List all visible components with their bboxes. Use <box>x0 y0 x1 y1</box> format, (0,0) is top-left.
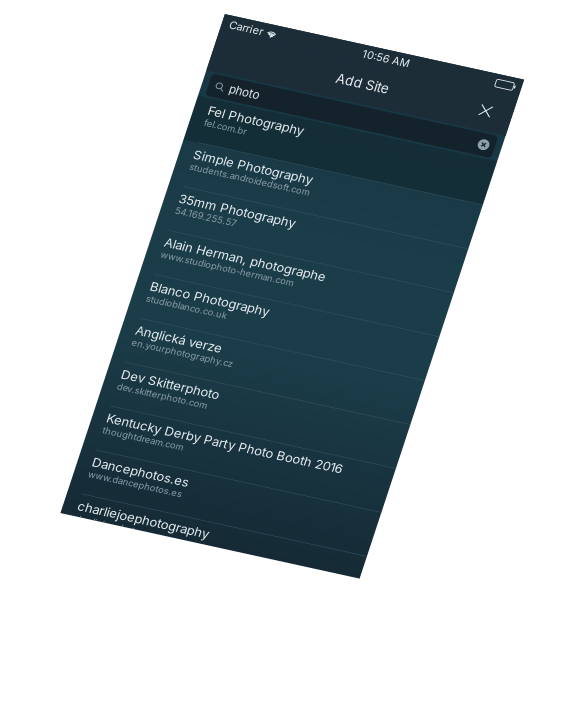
staticText: Add Site <box>357 48 413 64</box>
button[interactable]: Blanco Photography <box>225 307 545 357</box>
button[interactable]: 35mm Photography <box>225 207 545 257</box>
staticText: charliejoephotography <box>240 562 380 578</box>
staticText: photo <box>254 85 286 100</box>
button[interactable]: Dev Skitterphoto <box>225 407 545 457</box>
button[interactable]: Close <box>497 36 537 76</box>
button[interactable]: Fel Photography <box>225 107 545 157</box>
staticText: Blanco Photography <box>240 312 367 328</box>
staticText: www.dancephotos.es <box>240 528 340 540</box>
staticText: Carrier <box>233 17 269 31</box>
button[interactable]: Kentucky Derby Party Photo Booth 2016 <box>225 457 545 507</box>
button[interactable]: Anglická verze <box>225 357 545 407</box>
staticText: Kentucky Derby Party Photo Booth 2016 <box>240 462 492 478</box>
staticText: fel.com.br <box>240 128 286 140</box>
button[interactable]: Alain Herman, photographe <box>225 257 545 307</box>
staticText: Alain Herman, photographe <box>240 262 412 278</box>
button[interactable]: Dancephotos.es <box>225 507 545 557</box>
staticText: 54.169.255.57 <box>240 228 305 240</box>
staticText: Simple Photography <box>240 162 367 178</box>
staticText: www.studiophoto-herman.com <box>240 278 382 290</box>
staticText: thoughtdream.com <box>240 478 326 490</box>
button[interactable]: Clear search <box>520 87 538 99</box>
button[interactable]: charliejoephotography <box>225 557 545 607</box>
staticText: Fel Photography <box>240 112 342 128</box>
staticText: 35mm Photography <box>240 212 364 228</box>
button[interactable]: Simple Photography <box>225 157 545 207</box>
staticText: students.androidedsoft.com <box>240 178 368 190</box>
